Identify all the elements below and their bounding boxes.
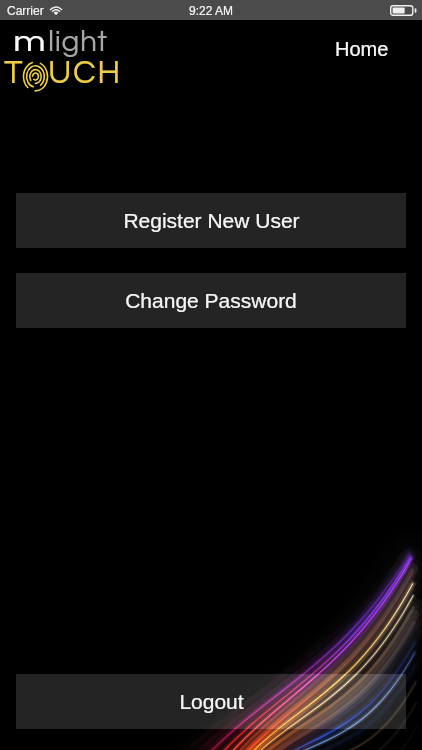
staticText: UCH (48, 56, 122, 90)
button[interactable]: Home (313, 26, 422, 72)
button[interactable]: Register New User (16, 193, 406, 248)
staticText: Logout (179, 690, 244, 713)
staticText: 9:22 AM (189, 4, 234, 17)
staticText: m (13, 27, 47, 57)
staticText: T (4, 56, 23, 90)
staticText: light (48, 26, 108, 57)
staticText: Home (335, 38, 389, 60)
button[interactable]: Logout (16, 674, 406, 729)
button[interactable]: Change Password (16, 273, 406, 328)
staticText: Change Password (125, 289, 297, 312)
staticText: Carrier (7, 4, 44, 17)
staticText: Register New User (123, 209, 300, 232)
